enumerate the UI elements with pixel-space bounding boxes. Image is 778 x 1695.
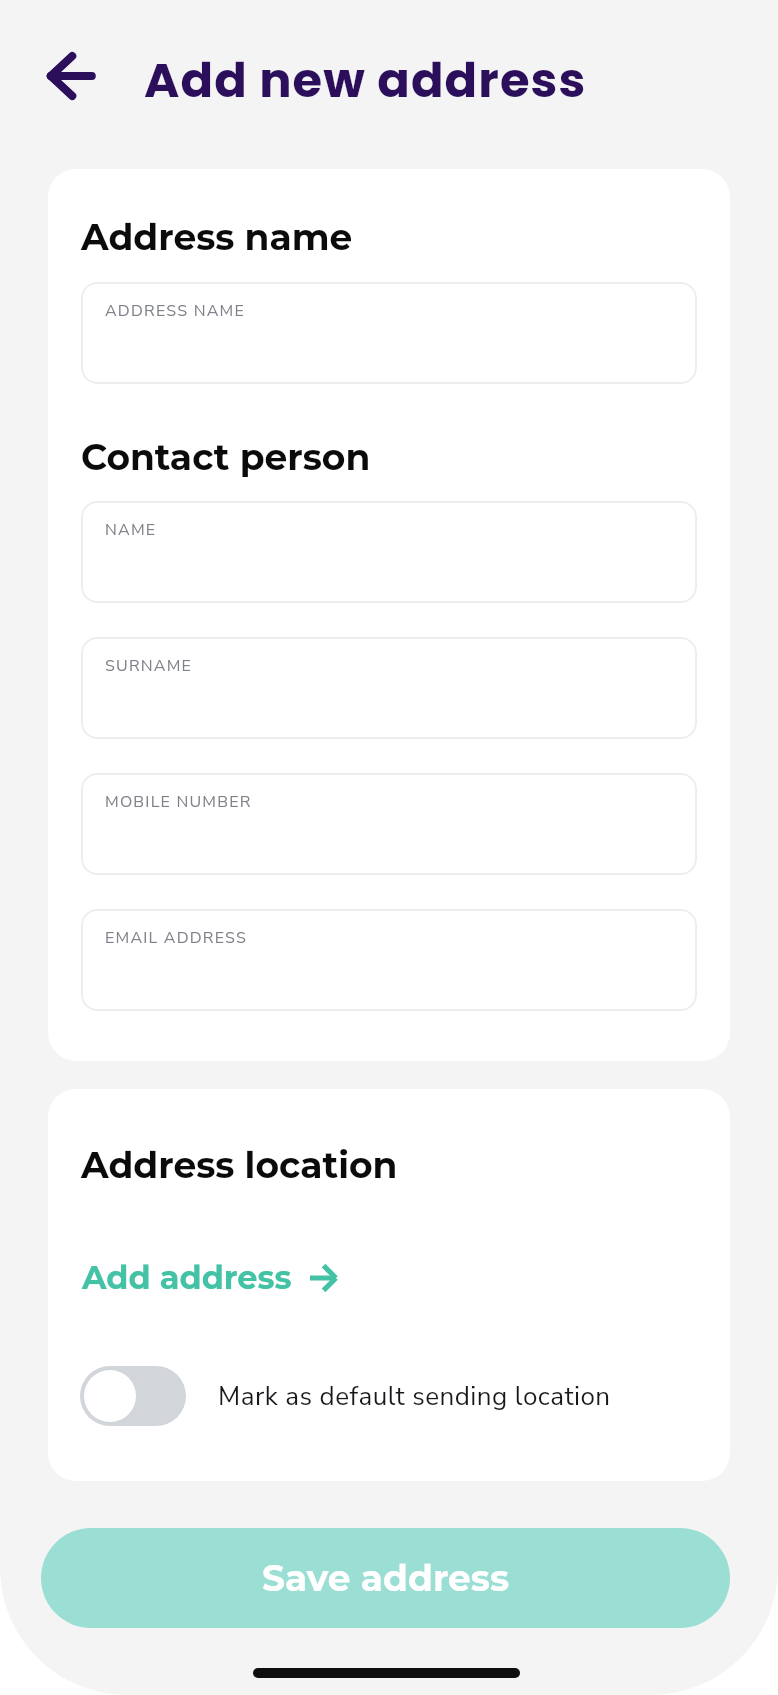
staticText: Address name bbox=[81, 215, 353, 259]
staticText: Add address bbox=[82, 1258, 292, 1297]
staticText: Save address bbox=[262, 1556, 510, 1600]
staticText: SURNAME bbox=[105, 655, 193, 677]
staticText: Contact person bbox=[81, 435, 371, 479]
button[interactable]: ADDRESS NAME bbox=[81, 282, 697, 384]
button[interactable]: MOBILE NUMBER bbox=[81, 773, 697, 875]
button[interactable]: Add address bbox=[82, 1258, 338, 1297]
button[interactable]: Save address bbox=[41, 1528, 730, 1628]
button[interactable]: EMAIL ADDRESS bbox=[81, 909, 697, 1011]
button[interactable]: Mark as default sending location bbox=[80, 1366, 186, 1426]
button[interactable]: SURNAME bbox=[81, 637, 697, 739]
staticText: Add new address bbox=[144, 47, 587, 114]
button[interactable]: NAME bbox=[81, 501, 697, 603]
staticText: ADDRESS NAME bbox=[105, 300, 245, 322]
staticText: Address location bbox=[81, 1143, 398, 1187]
button[interactable]: Back bbox=[36, 41, 106, 111]
staticText: EMAIL ADDRESS bbox=[105, 927, 248, 949]
staticText: MOBILE NUMBER bbox=[105, 791, 252, 813]
staticText: Mark as default sending location bbox=[218, 1379, 611, 1414]
staticText: NAME bbox=[105, 519, 157, 541]
